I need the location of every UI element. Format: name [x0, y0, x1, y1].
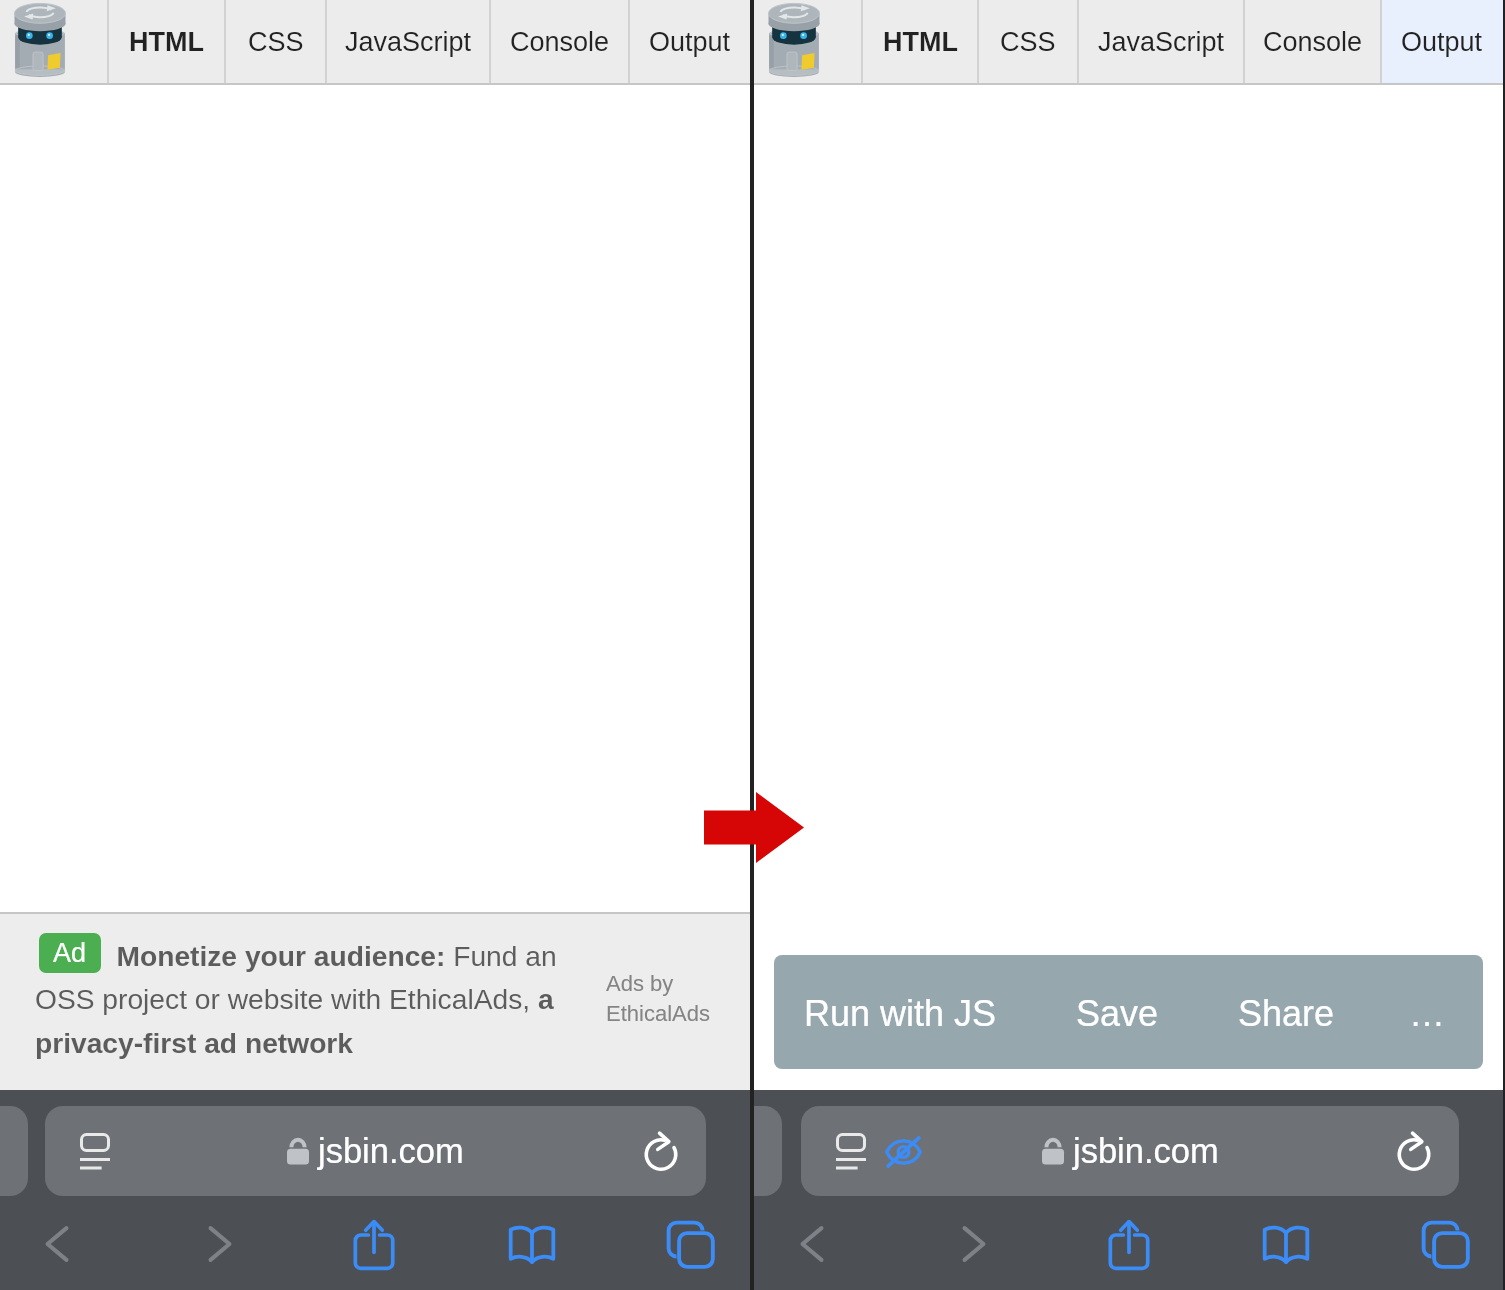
button[interactable]: More options: [1409, 993, 1445, 1033]
button[interactable]: Tabs: [663, 1217, 717, 1271]
button[interactable]: Run with JS: [804, 993, 997, 1033]
button[interactable]: Forward: [947, 1217, 1001, 1271]
button[interactable]: Share: [1238, 993, 1335, 1033]
staticText: CSS: [1000, 27, 1056, 57]
button[interactable]: [754, 0, 862, 83]
button[interactable]: Reload: [634, 1124, 688, 1178]
staticText: Console: [510, 27, 610, 57]
button[interactable]: HTML: [862, 0, 978, 83]
button[interactable]: CSS: [978, 0, 1078, 83]
button[interactable]: Previous tab: [754, 1106, 782, 1196]
button[interactable]: Bookmarks: [1259, 1217, 1313, 1271]
button[interactable]: Page settings: [75, 1128, 115, 1176]
button[interactable]: Page settings: [831, 1128, 871, 1176]
button[interactable]: Ad: [39, 933, 101, 973]
button[interactable]: Tabs: [1418, 1217, 1472, 1271]
staticText: Console: [1263, 27, 1363, 57]
button[interactable]: Previous tab: [0, 1106, 28, 1196]
staticText: HTML: [129, 27, 204, 57]
staticText: JavaScript: [1098, 27, 1225, 57]
staticText: JavaScript: [345, 27, 472, 57]
button[interactable]: Output: [1381, 0, 1503, 83]
staticText: jsbin.com: [318, 1132, 464, 1171]
button[interactable]: Bookmarks: [505, 1217, 559, 1271]
staticText: Output: [1401, 27, 1483, 57]
staticText: HTML: [883, 27, 958, 57]
button[interactable]: JavaScript: [1078, 0, 1244, 83]
button[interactable]: Back: [785, 1217, 839, 1271]
button[interactable]: Back: [30, 1217, 84, 1271]
staticText: CSS: [248, 27, 304, 57]
staticText: Ad Monetize your audience: Fund an OSS p…: [35, 940, 595, 1059]
staticText: …: [1409, 993, 1445, 1033]
button[interactable]: Console: [490, 0, 629, 83]
button[interactable]: Hide reader: [880, 1131, 927, 1173]
button[interactable]: Ad Monetize your audience: Fund an OSS p…: [35, 940, 595, 1059]
button[interactable]: JavaScript: [326, 0, 490, 83]
button[interactable]: Share: [1102, 1217, 1156, 1271]
button[interactable]: Reload: [1387, 1124, 1441, 1178]
button[interactable]: HTML: [108, 0, 225, 83]
staticText: Ads by EthicalAds: [606, 971, 736, 1026]
staticText: Output: [649, 27, 731, 57]
button[interactable]: Save: [1076, 993, 1159, 1033]
button[interactable]: Page settings: [801, 1106, 1459, 1196]
button[interactable]: Share: [347, 1217, 401, 1271]
button[interactable]: [0, 0, 108, 83]
button[interactable]: Forward: [193, 1217, 247, 1271]
button[interactable]: Page settings: [45, 1106, 706, 1196]
button[interactable]: Output: [629, 0, 750, 83]
button[interactable]: Console: [1244, 0, 1381, 83]
button[interactable]: CSS: [225, 0, 326, 83]
staticText: Run with JS: [804, 993, 997, 1033]
staticText: Share: [1238, 993, 1335, 1033]
staticText: Save: [1076, 993, 1159, 1033]
staticText: jsbin.com: [1073, 1132, 1219, 1171]
staticText: Ad: [53, 938, 87, 968]
